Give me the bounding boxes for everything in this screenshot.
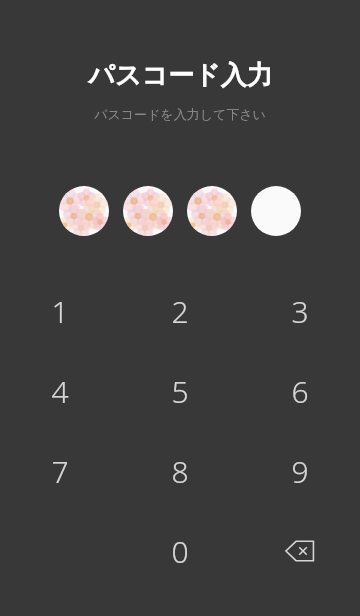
staticText: 1 xyxy=(51,291,69,332)
button[interactable]: 0 xyxy=(120,511,240,591)
button[interactable]: 9 xyxy=(240,431,360,511)
button[interactable]: Backspace xyxy=(240,511,360,591)
staticText: パスコードを入力して下さい xyxy=(94,106,266,122)
staticText: 3 xyxy=(291,291,309,332)
staticText: 2 xyxy=(171,291,189,332)
staticText: 8 xyxy=(171,451,189,492)
staticText: 6 xyxy=(291,371,309,412)
staticText: 9 xyxy=(291,451,309,492)
staticText: 4 xyxy=(51,371,69,412)
button[interactable]: 2 xyxy=(120,271,240,351)
button[interactable]: 4 xyxy=(0,351,120,431)
button[interactable]: 7 xyxy=(0,431,120,511)
staticText: 5 xyxy=(171,371,189,412)
button[interactable]: 6 xyxy=(240,351,360,431)
staticText: 0 xyxy=(171,531,189,572)
button[interactable]: 3 xyxy=(240,271,360,351)
button[interactable]: 5 xyxy=(120,351,240,431)
staticText: パスコード入力 xyxy=(88,59,273,92)
button[interactable]: 8 xyxy=(120,431,240,511)
button[interactable]: 1 xyxy=(0,271,120,351)
staticText: 7 xyxy=(51,451,69,492)
